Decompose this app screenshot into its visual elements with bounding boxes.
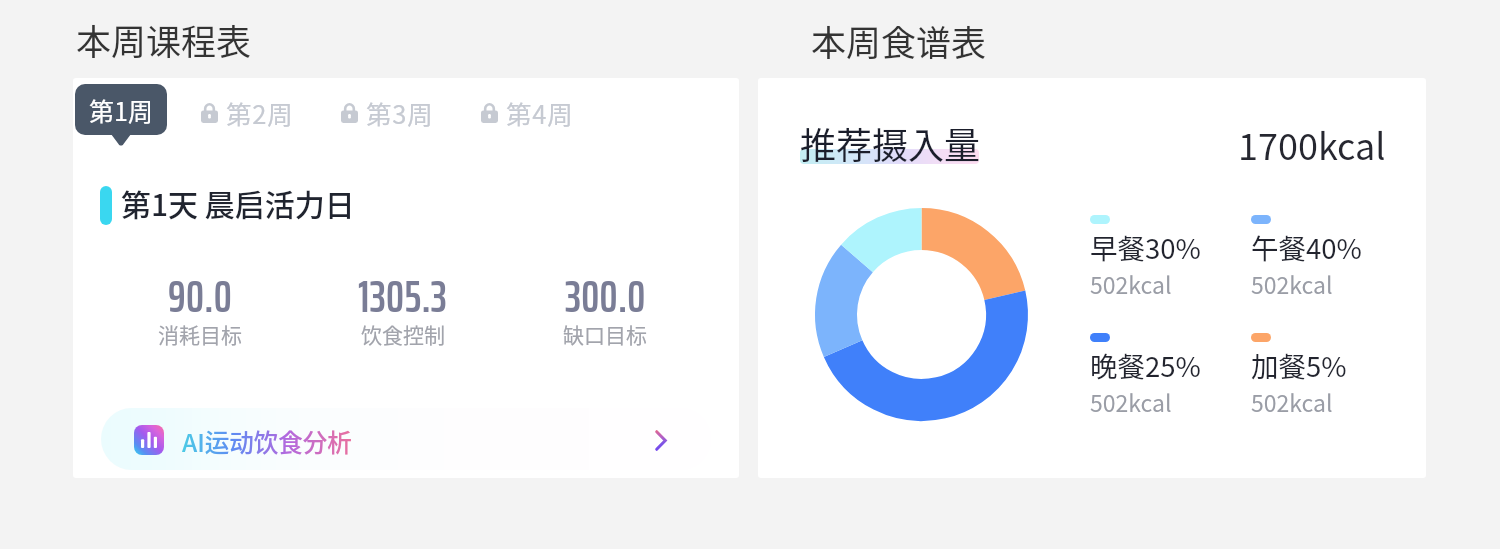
staticText: 晚餐25% [1090,345,1201,385]
staticText: 502kcal [1251,267,1333,300]
button[interactable]: 晚餐25% [1090,333,1230,433]
staticText: 502kcal [1090,267,1172,300]
staticText: 1305.3 [358,261,448,332]
staticText: 推荐摄入量 [800,117,981,169]
other: 查看AI运动饮食分析 [645,424,677,456]
button[interactable]: 早餐30% [1090,215,1230,315]
button[interactable]: 第3周 [341,94,434,131]
staticText: 早餐30% [1090,227,1201,267]
staticText: 1700kcal [1238,118,1386,170]
staticText: 300.0 [565,261,646,332]
staticText: 缺口目标 [563,319,647,349]
staticText: 502kcal [1251,385,1333,418]
staticText: 第3周 [366,94,434,131]
staticText: 加餐5% [1251,345,1347,385]
button[interactable]: 第2周 [201,94,294,131]
staticText: 本周课程表 [76,14,252,65]
staticText: 饮食控制 [361,319,445,349]
staticText: 第4周 [506,94,574,131]
staticText: 午餐40% [1251,227,1362,267]
button[interactable]: 午餐40% [1251,215,1391,315]
button[interactable]: 加餐5% [1251,333,1391,433]
staticText: 消耗目标 [158,319,242,349]
staticText: 第2周 [226,94,294,131]
button[interactable]: 第4周 [481,94,574,131]
staticText: AI运动饮食分析 [182,424,352,459]
button[interactable]: AI运动饮食分析 [101,408,711,470]
button[interactable]: 第1周 [75,84,167,135]
staticText: 本周食谱表 [811,15,987,66]
staticText: 502kcal [1090,385,1172,418]
staticText: 第1周 [89,92,153,128]
staticText: 第1天 晨启活力日 [121,181,355,224]
staticText: 90.0 [168,261,232,332]
